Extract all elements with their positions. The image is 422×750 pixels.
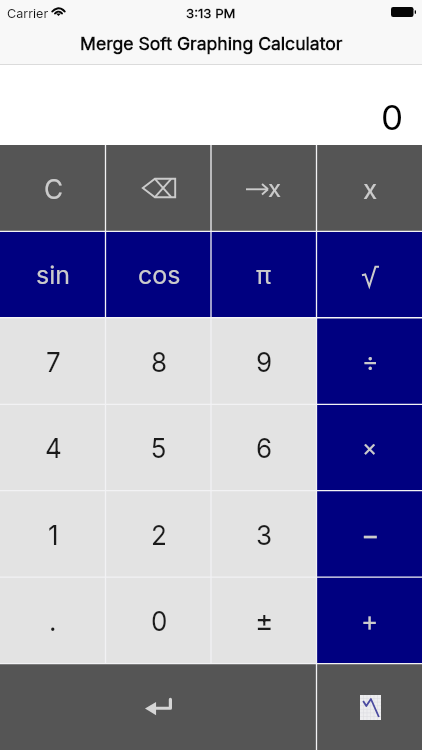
button[interactable]: +: [317, 577, 422, 663]
staticText: 8: [151, 347, 168, 378]
staticText: Carrier: [7, 6, 49, 21]
staticText: π: [256, 260, 272, 290]
staticText: 0: [151, 606, 168, 637]
button[interactable]: ×: [317, 404, 422, 490]
staticText: 3:13 PM: [186, 5, 236, 21]
staticText: Merge Soft Graphing Calculator: [80, 33, 343, 54]
button[interactable]: 4: [0, 404, 106, 490]
button[interactable]: 9: [211, 318, 317, 404]
staticText: ±: [255, 604, 274, 638]
staticText: 4: [45, 433, 62, 464]
button[interactable]: 8: [106, 318, 212, 404]
staticText: 6: [256, 433, 273, 464]
staticText: .: [49, 606, 57, 637]
button[interactable]: Square root: [317, 231, 422, 317]
button[interactable]: 2: [106, 491, 212, 577]
button[interactable]: 3: [211, 491, 317, 577]
staticText: 1: [48, 520, 59, 551]
staticText: cos: [138, 260, 181, 290]
button[interactable]: ±: [211, 577, 317, 663]
button[interactable]: cos: [106, 231, 212, 317]
button[interactable]: sin: [0, 231, 106, 317]
staticText: 3: [256, 520, 273, 551]
button[interactable]: Backspace: [106, 145, 212, 231]
staticText: −: [361, 518, 380, 552]
staticText: ×: [362, 434, 378, 462]
staticText: 7: [46, 347, 61, 378]
button[interactable]: .: [0, 577, 106, 663]
staticText: x: [268, 174, 282, 203]
staticText: x: [363, 174, 378, 205]
button[interactable]: C: [0, 145, 106, 231]
staticText: 5: [151, 433, 167, 464]
staticText: 0: [381, 96, 404, 138]
staticText: 2: [151, 520, 167, 551]
button[interactable]: x: [317, 145, 422, 231]
staticText: C: [44, 174, 63, 205]
staticText: 9: [256, 347, 273, 378]
button[interactable]: ÷: [317, 318, 422, 404]
button[interactable]: 7: [0, 318, 106, 404]
staticText: +: [361, 606, 379, 637]
button[interactable]: −: [317, 491, 422, 577]
button[interactable]: 5: [106, 404, 212, 490]
staticText: ÷: [362, 347, 379, 377]
button[interactable]: Store to x: [211, 145, 317, 231]
button[interactable]: 0: [106, 577, 212, 663]
button[interactable]: 1: [0, 491, 106, 577]
button[interactable]: 6: [211, 404, 317, 490]
button[interactable]: Graph: [317, 664, 422, 750]
button[interactable]: π: [211, 231, 317, 317]
staticText: sin: [36, 260, 71, 290]
button[interactable]: Enter: [0, 664, 317, 750]
